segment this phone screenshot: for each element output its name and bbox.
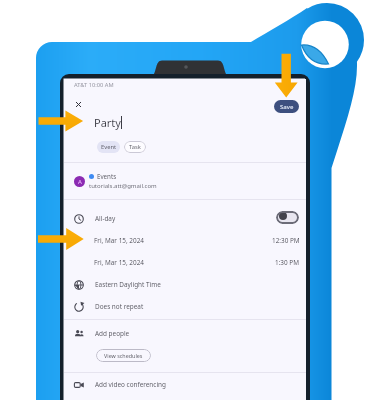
staticText: Eastern Daylight Time: [95, 280, 161, 289]
button[interactable]: Close: [70, 96, 87, 113]
staticText: All-day: [95, 214, 116, 223]
staticText: Fri, Mar 15, 2024: [94, 236, 144, 245]
staticText: Add people: [95, 329, 130, 338]
button[interactable]: Fri, Mar 15, 2024: [94, 252, 300, 273]
button[interactable]: Add people: [64, 323, 306, 344]
button[interactable]: Add video conferencing: [64, 374, 306, 395]
button[interactable]: Event: [97, 141, 120, 153]
staticText: Fri, Mar 15, 2024: [94, 258, 144, 267]
button[interactable]: Save: [274, 100, 299, 113]
staticText: Does not repeat: [95, 302, 144, 311]
staticText: tutorials.att@gmail.com: [89, 182, 157, 190]
staticText: Event: [101, 143, 117, 151]
staticText: View schedules: [104, 352, 143, 359]
button[interactable]: Fri, Mar 15, 2024: [94, 230, 300, 251]
button[interactable]: All-day toggle: [276, 211, 299, 224]
staticText: AT&T 10:00 AM: [74, 81, 114, 89]
staticText: 1:30 PM: [275, 258, 300, 267]
button[interactable]: Task: [124, 141, 146, 153]
button[interactable]: View schedules: [96, 349, 151, 362]
button[interactable]: Eastern Daylight Time: [64, 274, 306, 295]
button[interactable]: A: [64, 163, 306, 199]
staticText: Task: [129, 143, 141, 151]
staticText: A: [78, 178, 82, 186]
button[interactable]: Does not repeat: [64, 296, 306, 317]
button[interactable]: All-day: [64, 207, 306, 230]
staticText: Events: [97, 172, 117, 180]
staticText: 12:30 PM: [272, 236, 300, 245]
staticText: Party: [94, 115, 121, 130]
staticText: Add video conferencing: [95, 380, 166, 389]
staticText: Save: [280, 103, 294, 111]
